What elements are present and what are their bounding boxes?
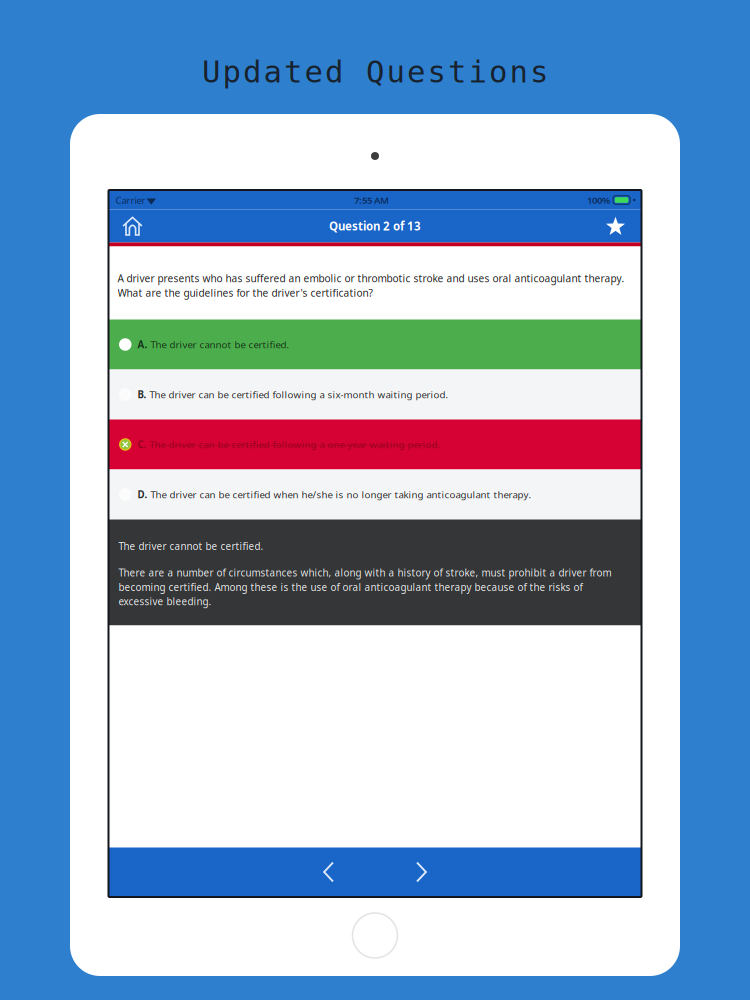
staticText: There are a number of circumstances whic… xyxy=(118,566,611,608)
staticText: Question 2 of 13 xyxy=(329,218,421,234)
staticText: A. The driver cannot be certified. xyxy=(137,338,289,351)
button[interactable]: Favorite xyxy=(589,210,641,242)
staticText: B. The driver can be certified following… xyxy=(137,388,448,401)
staticText: 100% xyxy=(587,193,610,207)
button[interactable]: C. The driver can be certified following… xyxy=(108,419,641,469)
button[interactable]: D. The driver can be certified when he/s… xyxy=(108,469,641,519)
button[interactable]: Home xyxy=(108,210,156,242)
button[interactable]: B. The driver can be certified following… xyxy=(108,369,641,419)
staticText: The driver cannot be certified. xyxy=(118,539,263,553)
button[interactable]: Next question xyxy=(403,850,440,893)
staticText: Updated Questions xyxy=(202,54,548,90)
button[interactable]: A. The driver cannot be certified. xyxy=(108,319,641,369)
staticText: Carrier xyxy=(115,193,145,207)
staticText: C. The driver can be certified following… xyxy=(137,438,440,451)
staticText: 7:55 AM xyxy=(354,193,389,207)
staticText: D. The driver can be certified when he/s… xyxy=(137,488,531,501)
button[interactable]: Previous question xyxy=(310,850,347,893)
staticText: A driver presents who has suffered an em… xyxy=(117,271,624,300)
